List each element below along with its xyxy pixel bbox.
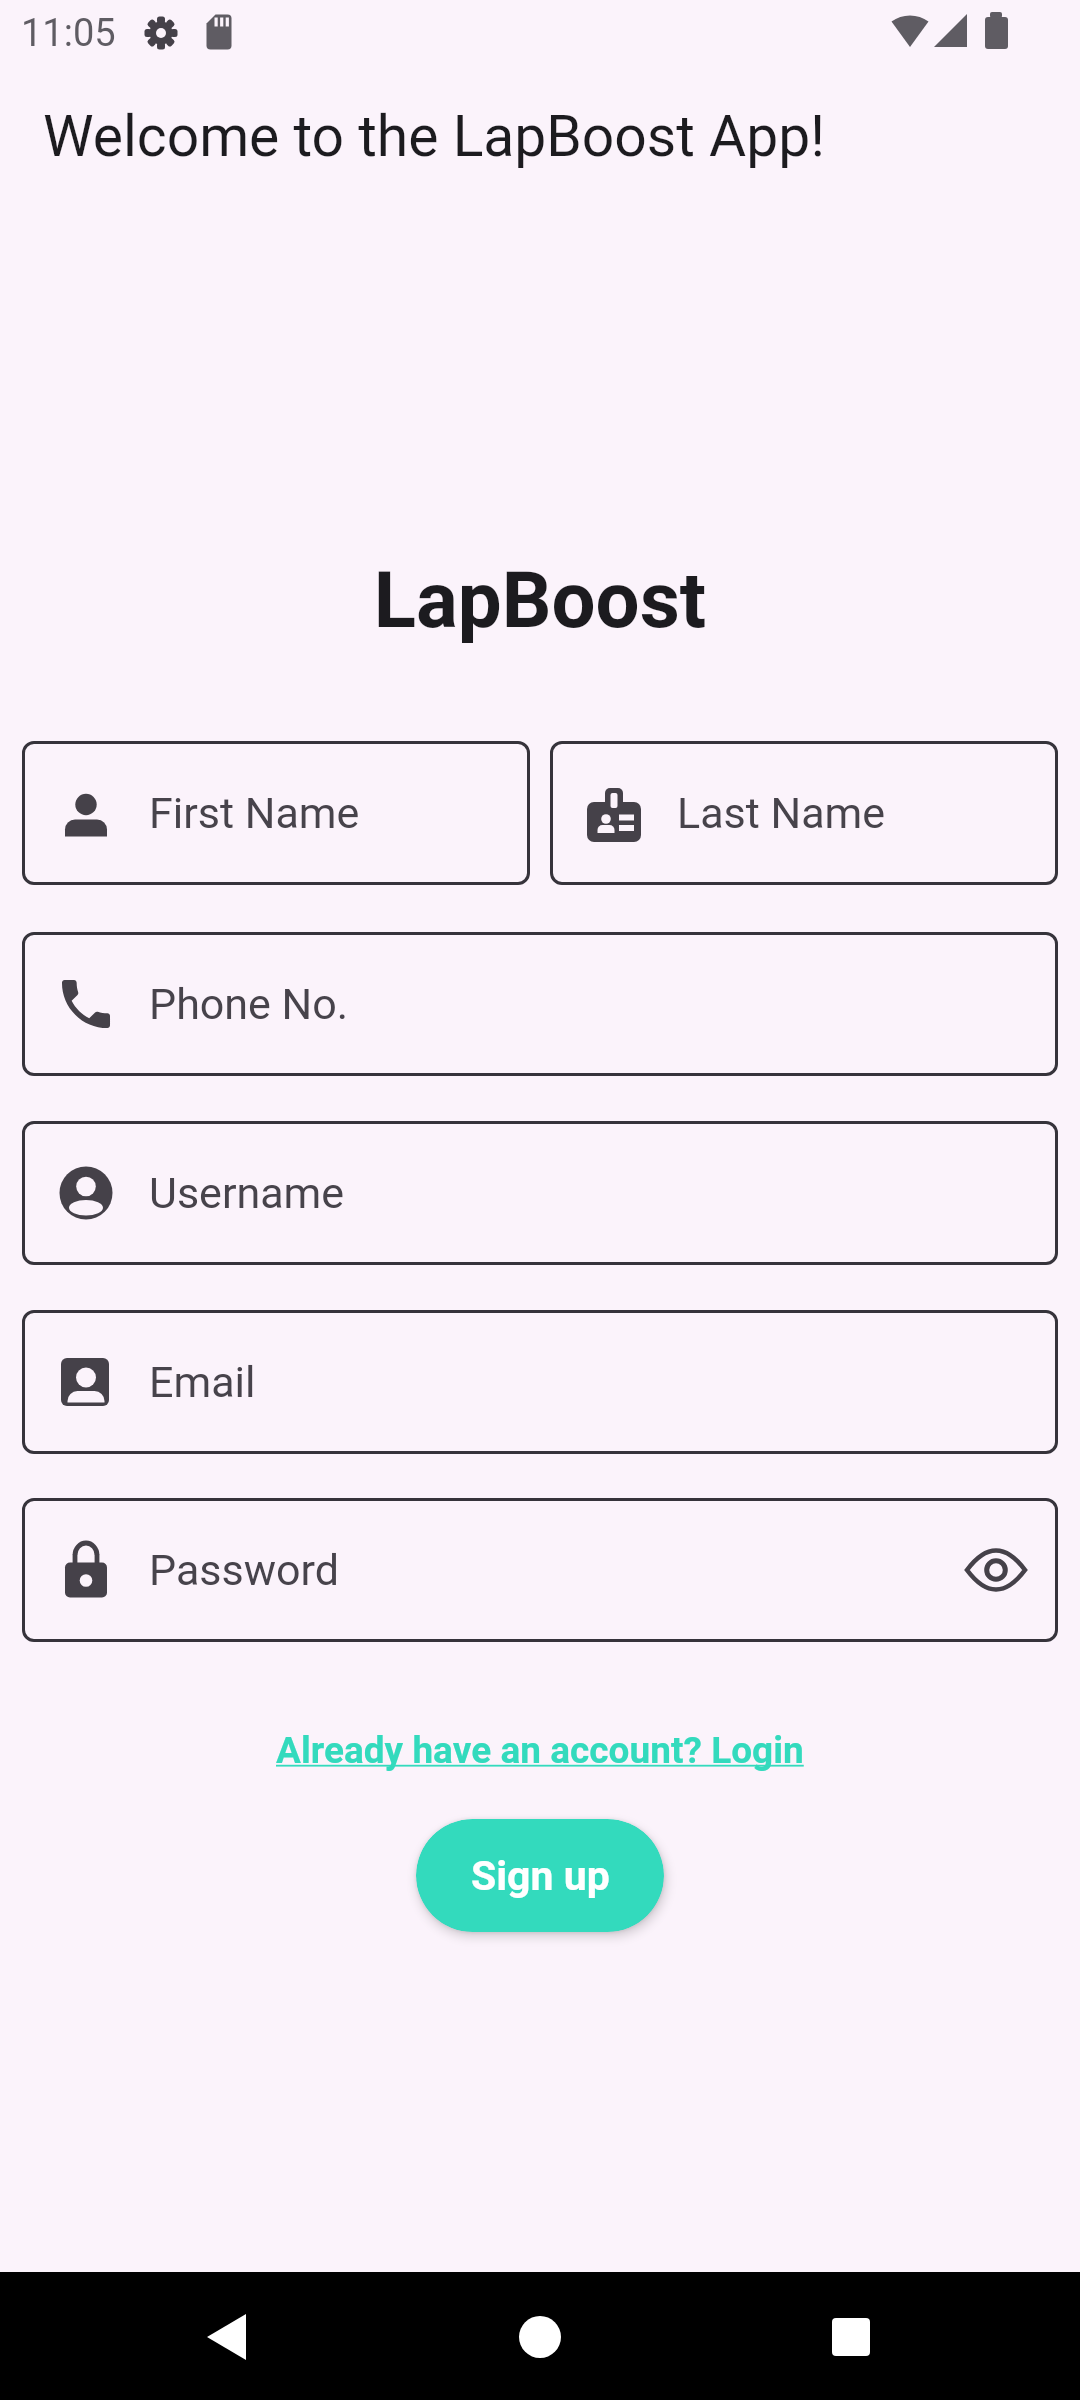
staticText: Sign up — [471, 1852, 610, 1900]
button[interactable]: Last Name — [550, 741, 1058, 885]
button[interactable]: Already have an account? Login — [276, 1729, 804, 1772]
button[interactable]: Password — [22, 1498, 1058, 1642]
button[interactable] — [185, 2314, 265, 2360]
staticText: Last Name — [677, 788, 886, 838]
button[interactable]: Phone No. — [22, 932, 1058, 1076]
staticText: Username — [149, 1168, 345, 1218]
button[interactable]: Sign up — [416, 1819, 664, 1932]
button[interactable] — [498, 2316, 582, 2358]
button[interactable] — [809, 2316, 893, 2358]
staticText: First Name — [149, 788, 360, 838]
staticText: Welcome to the LapBoost App! — [43, 103, 825, 170]
button[interactable]: Username — [22, 1121, 1058, 1265]
staticText: Email — [149, 1357, 256, 1407]
staticText: Phone No. — [149, 979, 349, 1029]
button[interactable]: Email — [22, 1310, 1058, 1454]
staticText: LapBoost — [0, 555, 1080, 646]
staticText: 11:05 — [21, 11, 116, 56]
button[interactable]: First Name — [22, 741, 530, 885]
staticText: Password — [149, 1545, 339, 1595]
